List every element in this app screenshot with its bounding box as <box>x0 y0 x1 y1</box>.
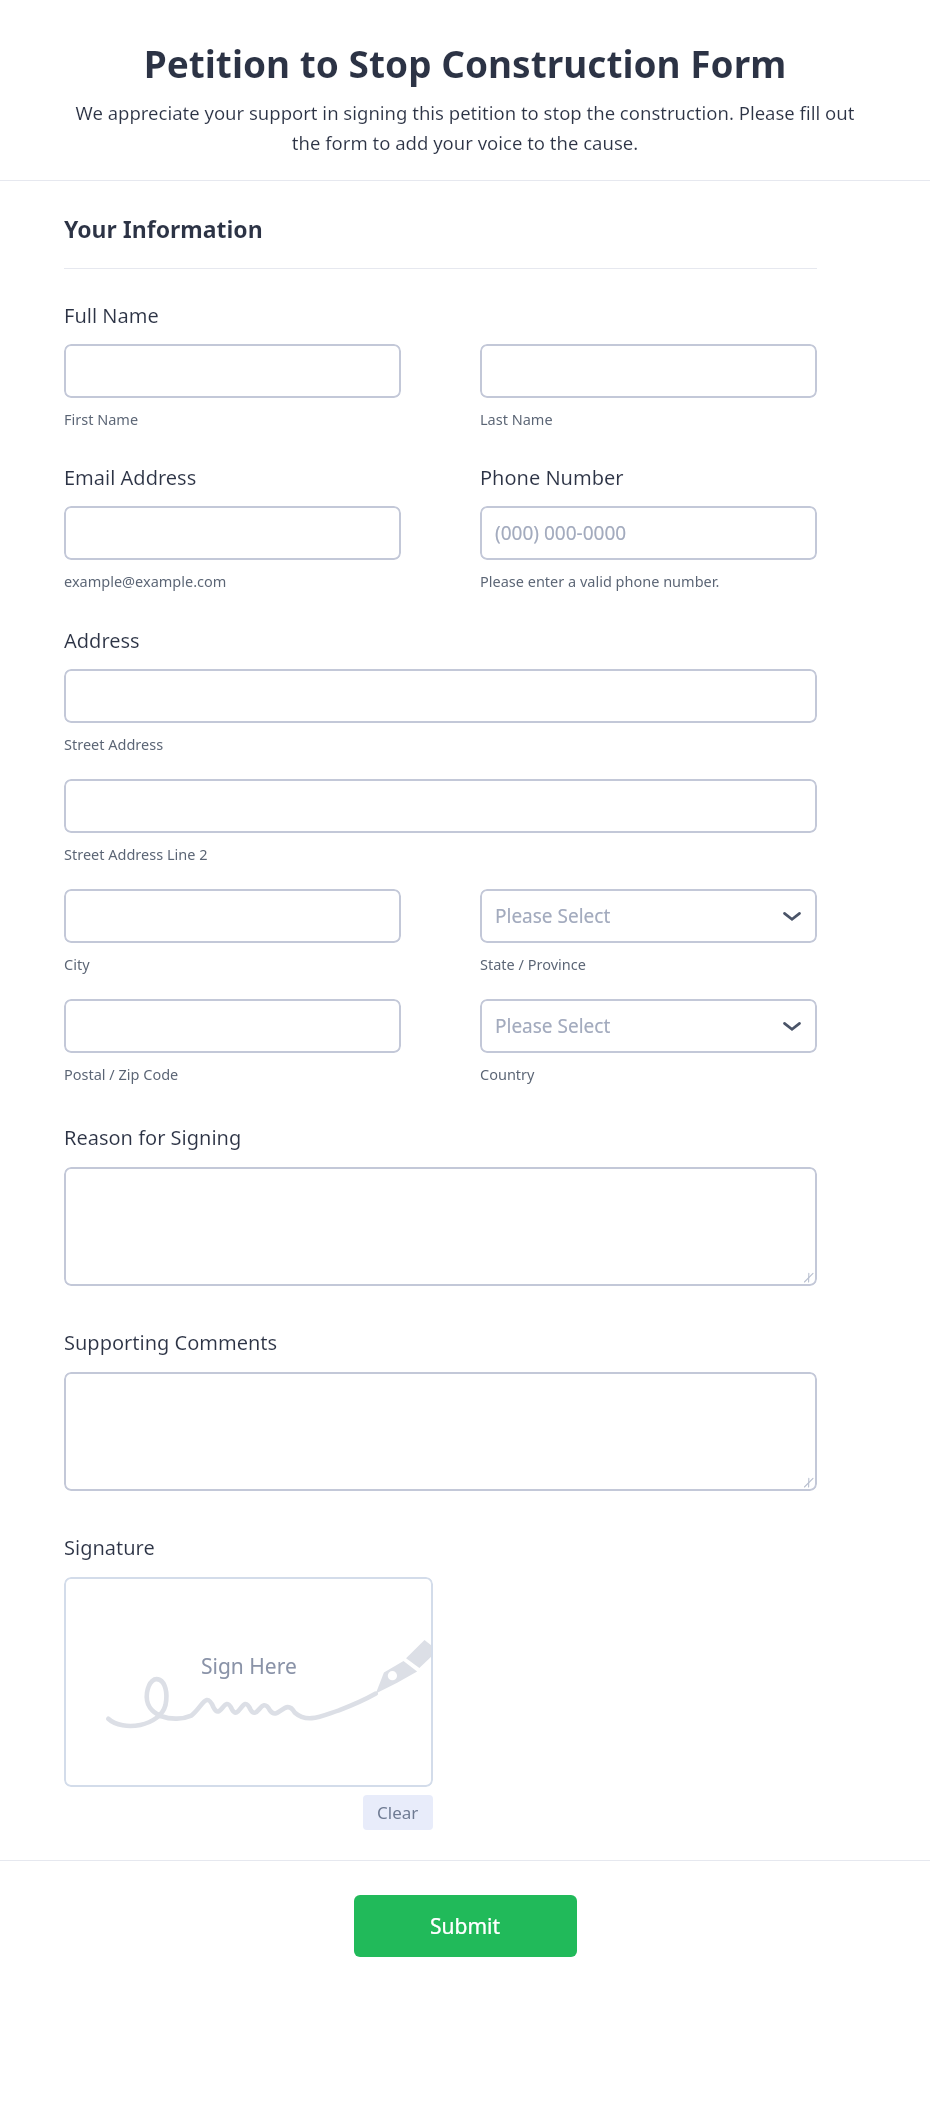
staticText: We appreciate your support in signing th… <box>66 100 864 156</box>
button[interactable]: Email Address input <box>64 506 401 560</box>
staticText: (000) 000-0000 <box>495 520 627 546</box>
staticText: Full Name <box>64 302 159 329</box>
button[interactable]: Postal / Zip Code input <box>64 999 401 1053</box>
staticText: Country <box>480 1064 535 1084</box>
staticText: Street Address <box>64 734 164 754</box>
button[interactable]: Sign Here signature pad <box>64 1577 433 1787</box>
staticText: Sign Here <box>201 1652 297 1681</box>
staticText: First Name <box>64 409 139 429</box>
staticText: Postal / Zip Code <box>64 1064 179 1084</box>
button[interactable]: City input <box>64 889 401 943</box>
button[interactable]: Reason for Signing textarea <box>64 1167 817 1286</box>
staticText: Please enter a valid phone number. <box>480 571 720 591</box>
button[interactable]: Submit <box>354 1895 577 1957</box>
staticText: State / Province <box>480 954 586 974</box>
button[interactable]: First Name input <box>64 344 401 398</box>
staticText: Submit <box>430 1912 501 1941</box>
button[interactable]: Clear <box>363 1795 433 1830</box>
staticText: Supporting Comments <box>64 1329 278 1356</box>
staticText: Street Address Line 2 <box>64 844 208 864</box>
button[interactable]: State / Province select <box>480 889 817 943</box>
button[interactable]: Country select <box>480 999 817 1053</box>
staticText: Email Address <box>64 464 197 491</box>
staticText: Your Information <box>64 213 263 244</box>
staticText: Last Name <box>480 409 553 429</box>
button[interactable]: Supporting Comments textarea <box>64 1372 817 1491</box>
staticText: Please Select <box>495 1013 611 1039</box>
staticText: Phone Number <box>480 464 624 491</box>
button[interactable]: Last Name input <box>480 344 817 398</box>
button[interactable]: Street Address input <box>64 669 817 723</box>
staticText: City <box>64 954 90 974</box>
staticText: Clear <box>377 1801 419 1824</box>
staticText: Petition to Stop Construction Form <box>32 38 898 88</box>
staticText: example@example.com <box>64 571 227 591</box>
staticText: Signature <box>64 1534 155 1561</box>
button[interactable]: Phone Number input <box>480 506 817 560</box>
staticText: Please Select <box>495 903 611 929</box>
staticText: Address <box>64 627 140 654</box>
button[interactable]: Street Address Line 2 input <box>64 779 817 833</box>
staticText: Reason for Signing <box>64 1124 242 1151</box>
